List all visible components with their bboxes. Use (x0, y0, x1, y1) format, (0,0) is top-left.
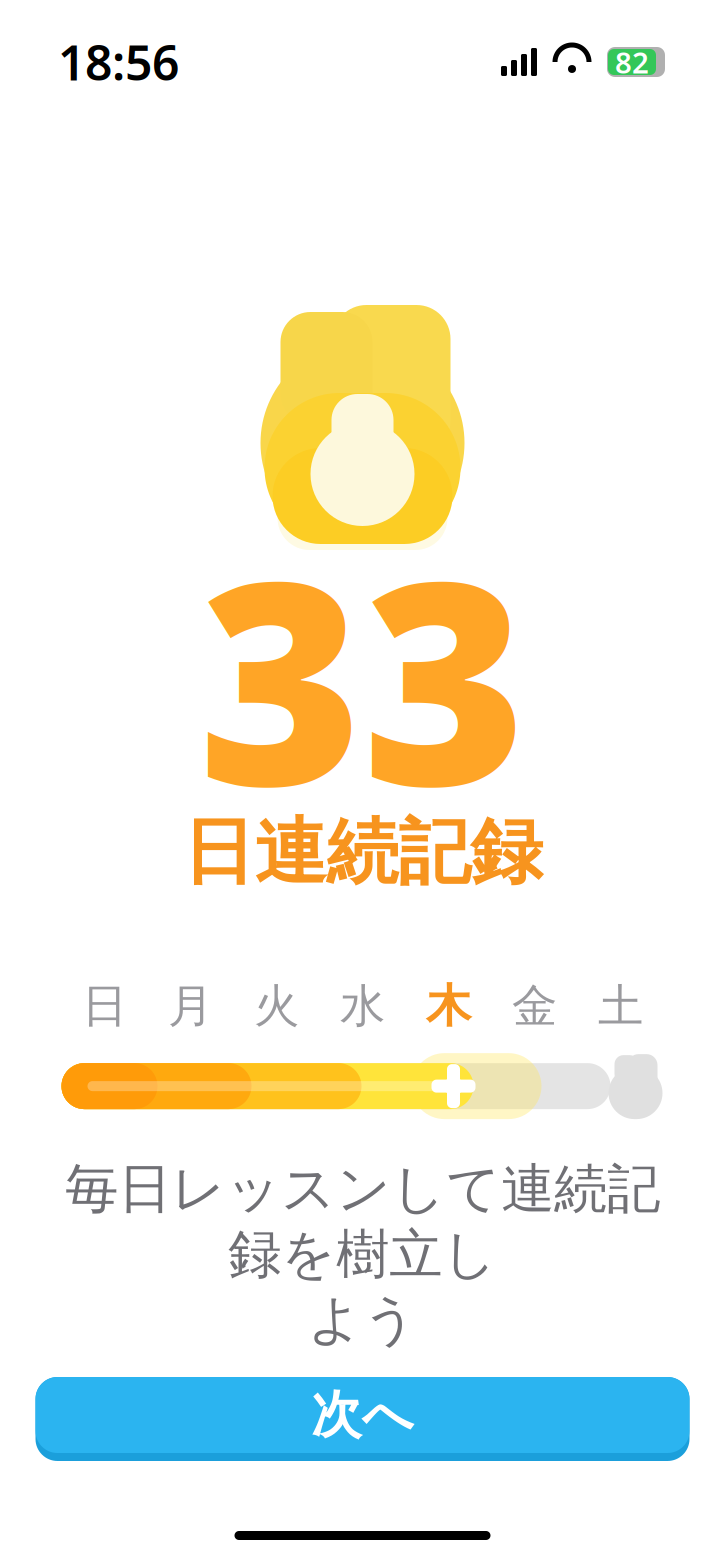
staticText: 土 (598, 978, 643, 1034)
staticText: 次へ (311, 1384, 414, 1446)
staticText: 日連続記録 (182, 808, 542, 896)
staticText: 火 (254, 978, 299, 1034)
staticText: 木 (426, 978, 471, 1034)
staticText: 水 (340, 978, 385, 1034)
staticText: 33 (198, 490, 526, 862)
button[interactable]: 次へ (35, 1377, 689, 1461)
staticText: 金 (512, 978, 557, 1034)
staticText: 日 (82, 978, 127, 1034)
staticText: 82 (615, 42, 649, 81)
staticText: 月 (168, 978, 213, 1034)
staticText: 18:56 (58, 30, 179, 94)
staticText: 毎日レッスンして連続記録を樹立し よう (65, 1156, 660, 1353)
